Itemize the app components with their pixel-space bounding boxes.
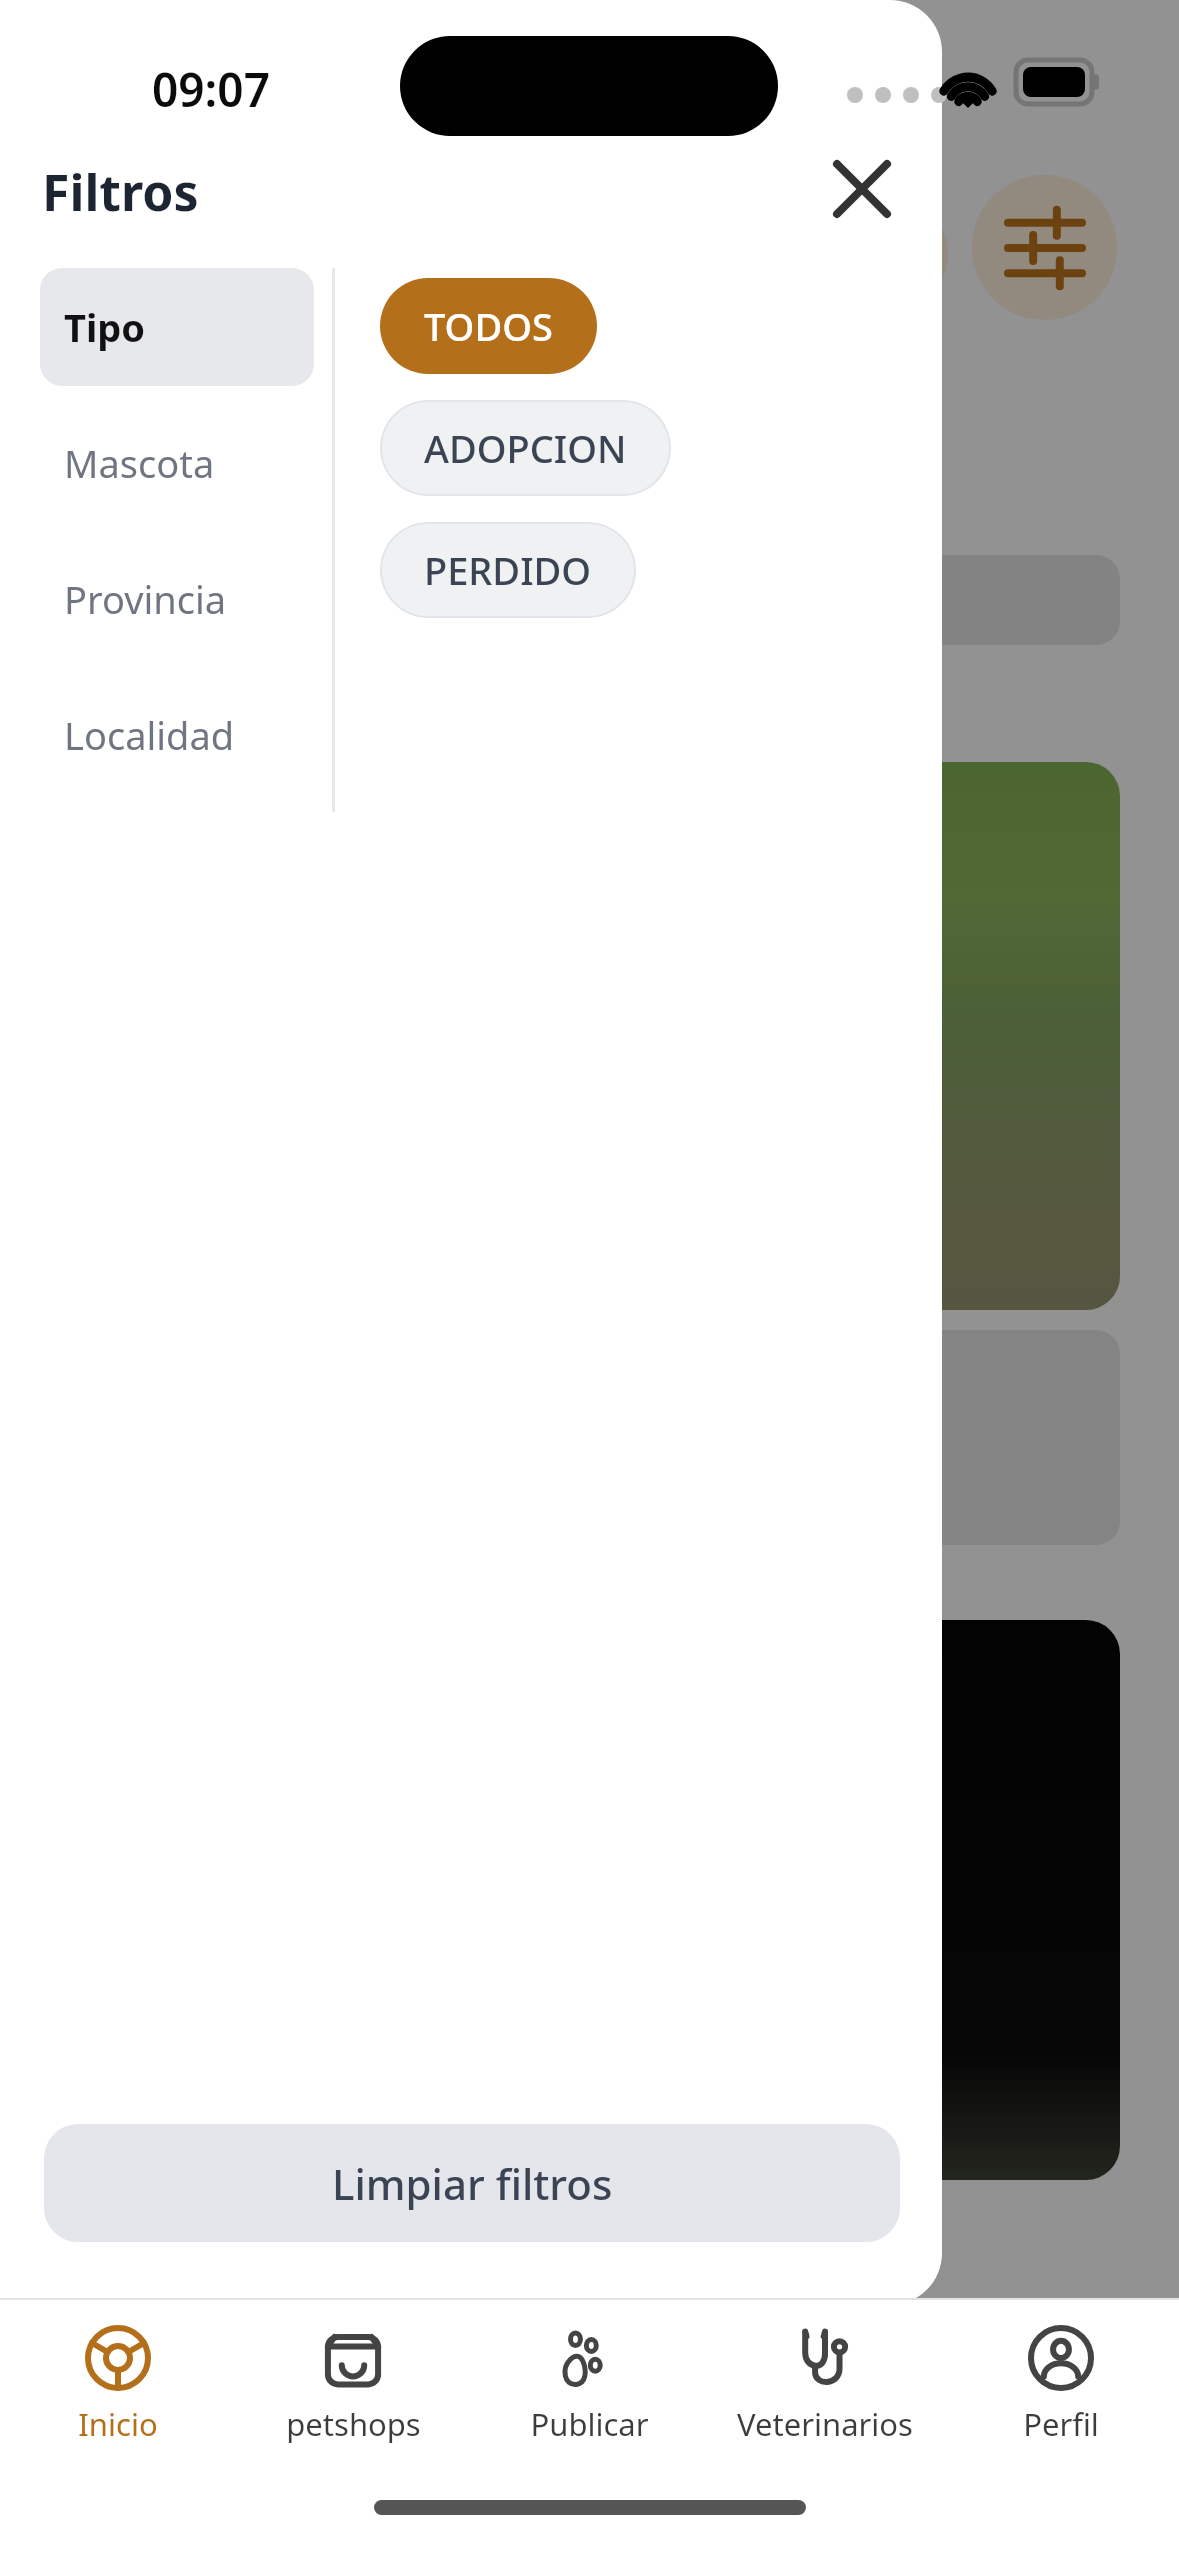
staticText: TODOS <box>424 300 553 352</box>
button[interactable]: Perfil <box>943 2300 1179 2470</box>
button[interactable]: Tipo <box>40 268 314 386</box>
button[interactable]: Localidad <box>40 676 314 794</box>
button[interactable]: Provincia <box>40 540 314 658</box>
staticText: Limpiar filtros <box>332 2155 613 2212</box>
staticText: Publicar <box>530 2403 649 2445</box>
button[interactable]: Publicar <box>471 2300 707 2470</box>
button[interactable]: ADOPCION <box>380 400 671 496</box>
staticText: Localidad <box>64 709 235 761</box>
staticText: 09:07 <box>152 58 270 121</box>
staticText: ADOPCION <box>424 422 627 474</box>
button[interactable]: Limpiar filtros <box>44 2124 900 2242</box>
button[interactable]: Inicio <box>0 2300 235 2470</box>
staticText: Tipo <box>64 301 146 353</box>
button[interactable]: petshops <box>235 2300 471 2470</box>
staticText: PERDIDO <box>424 544 592 596</box>
staticText: Filtros <box>42 158 199 226</box>
staticText: petshops <box>286 2403 421 2445</box>
staticText: Inicio <box>78 2403 158 2445</box>
button[interactable]: PERDIDO <box>380 522 636 618</box>
button[interactable]: TODOS <box>380 278 597 374</box>
button[interactable]: Veterinarios <box>707 2300 943 2470</box>
staticText: Provincia <box>64 573 227 625</box>
staticText: Perfil <box>1023 2403 1099 2445</box>
staticText: Mascota <box>64 437 215 489</box>
staticText: Veterinarios <box>737 2403 913 2445</box>
button[interactable]: Filtros <box>972 175 1117 320</box>
button[interactable]: Cerrar <box>808 135 916 243</box>
button[interactable]: Mascota <box>40 404 314 522</box>
